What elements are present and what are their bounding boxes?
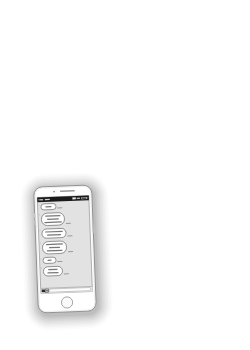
- button[interactable]: Smartphone chat conversation mockup: [0, 0, 250, 350]
